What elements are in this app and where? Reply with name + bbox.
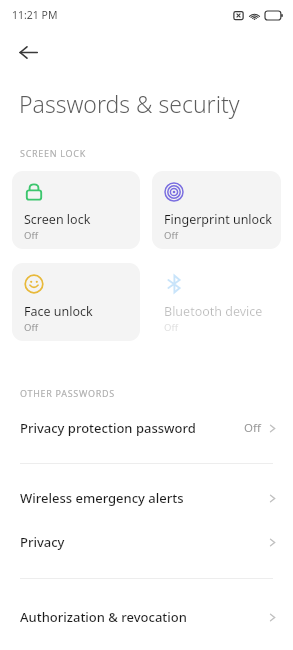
staticText: Privacy: [20, 533, 268, 551]
staticText: Authorization & revocation: [20, 608, 268, 626]
staticText: OTHER PASSWORDS: [20, 387, 115, 399]
staticText: Bluetooth device: [164, 303, 263, 320]
staticText: Screen lock: [24, 211, 91, 228]
staticText: Passwords & security: [19, 88, 240, 119]
button[interactable]: Bluetooth device: [152, 263, 281, 341]
staticText: 11:21 PM: [12, 8, 58, 22]
button[interactable]: Back: [6, 30, 50, 74]
button[interactable]: Privacy: [0, 520, 293, 564]
staticText: Off: [164, 321, 178, 334]
button[interactable]: Authorization & revocation: [0, 595, 293, 639]
button[interactable]: Fingerprint unlock: [152, 171, 281, 249]
staticText: Off: [164, 229, 178, 242]
staticText: Off: [244, 420, 261, 436]
staticText: Off: [24, 229, 38, 242]
staticText: Off: [24, 321, 38, 334]
button[interactable]: Face unlock: [12, 263, 140, 341]
staticText: Privacy protection password: [20, 419, 244, 437]
staticText: Face unlock: [24, 303, 93, 320]
staticText: SCREEN LOCK: [20, 147, 86, 159]
staticText: Wireless emergency alerts: [20, 489, 268, 507]
button[interactable]: Screen lock: [12, 171, 140, 249]
button[interactable]: Privacy protection password: [0, 407, 293, 449]
button[interactable]: Wireless emergency alerts: [0, 476, 293, 520]
staticText: Fingerprint unlock: [164, 211, 272, 228]
